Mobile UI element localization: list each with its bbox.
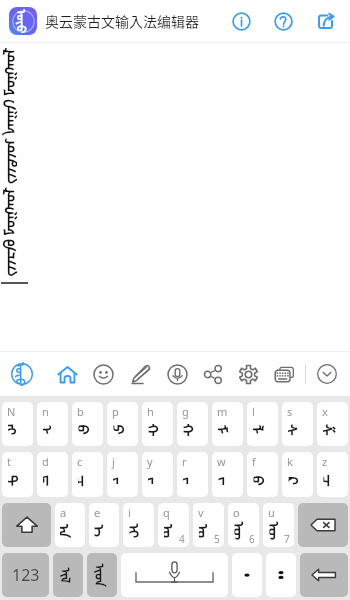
button[interactable]: ᠢᠯ <box>53 553 83 597</box>
button[interactable]: l <box>247 402 278 446</box>
button[interactable]: j <box>107 452 138 497</box>
button[interactable]: x <box>317 402 348 446</box>
staticText: p <box>112 404 119 419</box>
staticText: 奥云蒙古文输入法编辑器 <box>45 11 199 31</box>
button[interactable]: v <box>193 503 224 547</box>
button[interactable]: a <box>55 503 85 547</box>
button[interactable]: z <box>317 452 348 497</box>
staticText: s <box>287 404 293 419</box>
staticText: ᠷ <box>183 477 203 485</box>
button[interactable]: Share <box>196 357 230 391</box>
button[interactable]: Share <box>311 7 339 35</box>
staticText: v <box>198 505 204 520</box>
button[interactable]: Comma <box>232 553 262 597</box>
staticText: j <box>112 454 115 469</box>
staticText: ᠡ <box>94 524 114 537</box>
button[interactable]: Full stop <box>266 553 296 597</box>
button[interactable]: b <box>72 402 103 446</box>
staticText: ᠢᠯ <box>56 567 79 583</box>
staticText: 5 <box>214 532 220 546</box>
staticText: ᠲ <box>8 475 28 487</box>
staticText: ᠴ <box>78 475 98 487</box>
button[interactable]: s <box>282 402 313 446</box>
staticText: h <box>147 404 154 419</box>
button[interactable]: u <box>263 503 294 547</box>
staticText: ᠱ <box>323 424 343 436</box>
button[interactable]: N <box>2 402 33 446</box>
staticText: o <box>233 505 240 520</box>
staticText: 6 <box>249 532 255 546</box>
staticText: c <box>77 454 83 469</box>
button[interactable]: q <box>158 503 189 547</box>
button[interactable]: i <box>123 503 154 547</box>
staticText: ᠪ <box>78 424 98 435</box>
staticText: b <box>77 404 84 419</box>
staticText: N <box>7 404 16 419</box>
button[interactable]: Switch keyboard <box>267 357 301 391</box>
staticText: g <box>182 404 189 419</box>
staticText: 4 <box>179 532 185 546</box>
staticText: a <box>60 505 67 520</box>
staticText: ᠠ <box>60 524 80 538</box>
button[interactable]: d <box>37 452 68 497</box>
staticText: ᠥ <box>234 521 254 540</box>
button[interactable]: o <box>228 503 259 547</box>
staticText: ᠨ <box>43 425 63 435</box>
button[interactable]: Voice input <box>160 357 194 391</box>
button[interactable]: Emoji <box>86 357 120 391</box>
button[interactable]: Space <box>121 553 228 597</box>
staticText: n <box>42 404 49 419</box>
button[interactable]: e <box>89 503 119 547</box>
staticText: f <box>252 454 256 469</box>
button[interactable]: Home <box>50 357 84 391</box>
staticText: ᠺ <box>288 476 308 485</box>
button[interactable]: n <box>37 402 68 446</box>
staticText: 7 <box>284 532 290 546</box>
button[interactable]: k <box>282 452 313 497</box>
staticText: u <box>268 505 275 520</box>
staticText: w <box>217 454 226 469</box>
button[interactable]: p <box>107 402 138 446</box>
button[interactable]: ᠢᠳ <box>87 553 117 597</box>
staticText: ᠬ <box>148 423 168 436</box>
button[interactable]: Information <box>227 7 255 35</box>
button[interactable]: m <box>212 402 243 446</box>
staticText: z <box>322 454 328 469</box>
staticText: ᠢᠳ <box>90 563 113 587</box>
staticText: ᠰ <box>288 424 308 436</box>
staticText: ᠮᠣᠩᠭᠣᠯ ᠬᠢᠭᠠᠡᠨ ᠦᠲᠢᠭ ᠮᠣᠩᠭᠣᠯ ᠪᠢᠴᠢᠭ ᠨᠡᠷᠡᠮᠵᠢᠯ… <box>0 48 17 288</box>
staticText: k <box>287 454 293 469</box>
staticText: i <box>128 505 131 520</box>
staticText: ᠹ <box>253 475 273 486</box>
button[interactable]: Shift <box>2 503 51 547</box>
staticText: ᠢ <box>129 523 149 538</box>
staticText: ᠩ <box>8 424 28 436</box>
button[interactable]: r <box>177 452 208 497</box>
staticText: ᠭ <box>183 423 203 436</box>
staticText: ᠽ <box>323 474 343 487</box>
button[interactable]: Backspace <box>298 503 348 547</box>
button[interactable]: Enter <box>300 553 348 597</box>
button[interactable]: 123 <box>2 553 49 597</box>
staticText: y <box>147 454 153 469</box>
staticText: ᠣ <box>164 524 184 538</box>
button[interactable]: f <box>247 452 278 497</box>
button[interactable]: c <box>72 452 103 497</box>
staticText: ᠥᠥ <box>11 362 32 386</box>
button[interactable]: g <box>177 402 208 446</box>
button[interactable]: Handwriting <box>123 357 157 391</box>
button[interactable]: Help <box>269 7 297 35</box>
button[interactable]: t <box>2 452 33 497</box>
staticText: ᠦ <box>269 521 289 540</box>
staticText: 123 <box>12 564 40 586</box>
button[interactable]: Mongolian input <box>5 357 39 391</box>
staticText: ᠯ <box>253 425 273 435</box>
button[interactable]: Collapse keyboard <box>312 359 342 389</box>
button[interactable]: Settings <box>231 357 265 391</box>
staticText: ᠳ <box>43 475 63 487</box>
button[interactable]: h <box>142 402 173 446</box>
staticText: ᠥᠥ <box>12 9 33 33</box>
button[interactable]: w <box>212 452 243 497</box>
staticText: ᠤ <box>199 524 219 538</box>
button[interactable]: y <box>142 452 173 497</box>
